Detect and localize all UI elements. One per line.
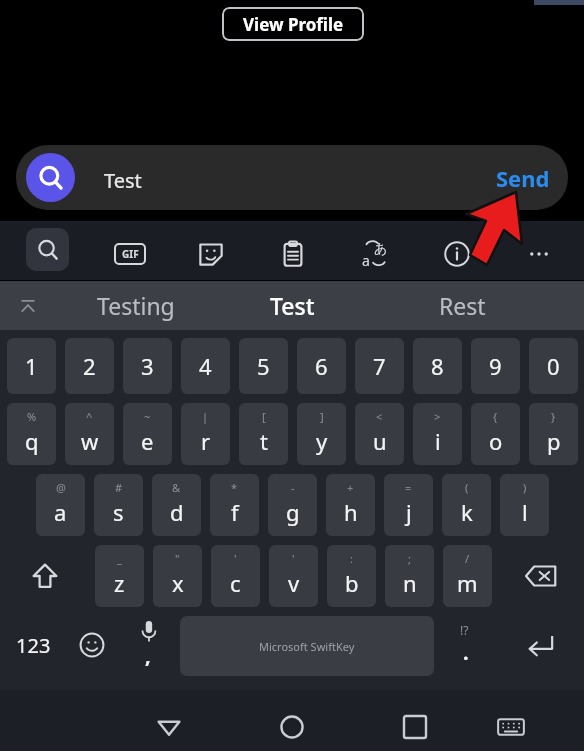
button[interactable]: ]	[297, 403, 346, 465]
staticText: Test	[270, 290, 315, 321]
button[interactable]: )	[500, 474, 549, 536]
button[interactable]: Microsoft SwiftKey	[180, 616, 434, 676]
staticText: s	[113, 497, 124, 527]
button[interactable]: =	[384, 474, 433, 536]
button[interactable]: 0	[529, 338, 578, 394]
staticText: View Profile	[243, 13, 344, 36]
staticText: <	[376, 409, 383, 424]
button[interactable]: Enter	[505, 615, 575, 675]
staticText: *	[231, 480, 238, 495]
staticText: %	[27, 409, 37, 424]
staticText: 8	[431, 351, 444, 381]
button[interactable]: ^	[65, 403, 114, 465]
button[interactable]: <	[355, 403, 404, 465]
staticText: q	[25, 426, 39, 456]
button[interactable]: %	[7, 403, 56, 465]
button[interactable]: Testing	[48, 281, 224, 330]
staticText: Testing	[97, 290, 175, 321]
button[interactable]: Comma and voice input	[124, 615, 176, 675]
button[interactable]: GIF	[108, 232, 152, 276]
staticText: x	[172, 568, 184, 598]
button[interactable]: ;	[385, 545, 434, 607]
button[interactable]: Switch keyboard	[487, 703, 535, 751]
staticText: f	[231, 497, 239, 527]
button[interactable]: ~	[123, 403, 172, 465]
staticText: i	[435, 426, 441, 456]
staticText: )	[523, 480, 527, 495]
staticText: j	[406, 497, 412, 527]
button[interactable]: @	[36, 474, 85, 536]
button[interactable]: Rest	[382, 281, 542, 330]
staticText: '	[292, 551, 295, 566]
button[interactable]: 9	[471, 338, 520, 394]
button[interactable]: View Profile	[222, 7, 364, 41]
staticText: 7	[373, 351, 386, 381]
button[interactable]: Stickers	[189, 232, 233, 276]
button[interactable]: Emoji	[66, 615, 118, 675]
button[interactable]: +	[326, 474, 375, 536]
button[interactable]: '	[211, 545, 260, 607]
button[interactable]: Info	[435, 232, 479, 276]
button[interactable]: !?	[440, 615, 496, 675]
button[interactable]: 4	[181, 338, 230, 394]
staticText: y	[316, 426, 328, 456]
staticText: /	[465, 551, 470, 566]
button[interactable]: -	[268, 474, 317, 536]
staticText: #	[115, 480, 123, 495]
button[interactable]: Home	[268, 703, 316, 751]
button[interactable]: Close suggestions	[8, 281, 48, 330]
staticText: あ	[374, 240, 388, 256]
button[interactable]: &	[152, 474, 201, 536]
button[interactable]: #	[94, 474, 143, 536]
button[interactable]: Send	[490, 157, 556, 199]
staticText: a	[54, 497, 67, 527]
button[interactable]: '	[269, 545, 318, 607]
button[interactable]: /	[443, 545, 492, 607]
button[interactable]: {	[471, 403, 520, 465]
button[interactable]: 2	[65, 338, 114, 394]
button[interactable]: "	[153, 545, 202, 607]
staticText: +	[347, 480, 354, 495]
button[interactable]: 5	[239, 338, 288, 394]
button[interactable]: Recents	[391, 703, 439, 751]
button[interactable]: 7	[355, 338, 404, 394]
button[interactable]: Shift	[8, 545, 82, 607]
button[interactable]: Clipboard	[271, 232, 315, 276]
button[interactable]: (	[442, 474, 491, 536]
button[interactable]: 1	[7, 338, 56, 394]
button[interactable]: Translate	[353, 232, 397, 276]
staticText: 1	[25, 351, 38, 381]
staticText: l	[522, 497, 528, 527]
staticText: 123	[16, 632, 51, 659]
staticText: [	[262, 409, 266, 424]
button[interactable]: |	[181, 403, 230, 465]
button[interactable]: }	[529, 403, 578, 465]
staticText: b	[345, 568, 359, 598]
button[interactable]: Search	[16, 145, 568, 210]
button[interactable]: :	[327, 545, 376, 607]
staticText: k	[461, 497, 473, 527]
button[interactable]: More options	[517, 232, 561, 276]
button[interactable]: 123	[2, 615, 64, 675]
button[interactable]: [	[239, 403, 288, 465]
button[interactable]: _	[95, 545, 144, 607]
button[interactable]: Backspace	[504, 545, 578, 607]
staticText: 0	[547, 351, 560, 381]
button[interactable]: 8	[413, 338, 462, 394]
staticText: >	[434, 409, 441, 424]
button[interactable]: Test	[224, 281, 360, 330]
button[interactable]: 3	[123, 338, 172, 394]
staticText: ;	[408, 551, 411, 566]
button[interactable]: Search	[26, 228, 69, 271]
button[interactable]: >	[413, 403, 462, 465]
button[interactable]: 6	[297, 338, 346, 394]
button[interactable]: *	[210, 474, 259, 536]
staticText: |	[202, 409, 209, 424]
staticText: v	[288, 568, 300, 598]
button[interactable]: Back	[145, 703, 193, 751]
staticText: ^	[86, 409, 93, 424]
staticText: r	[201, 426, 211, 456]
staticText: c	[230, 568, 241, 598]
staticText: GIF	[122, 247, 139, 261]
button[interactable]: Search	[26, 153, 75, 202]
